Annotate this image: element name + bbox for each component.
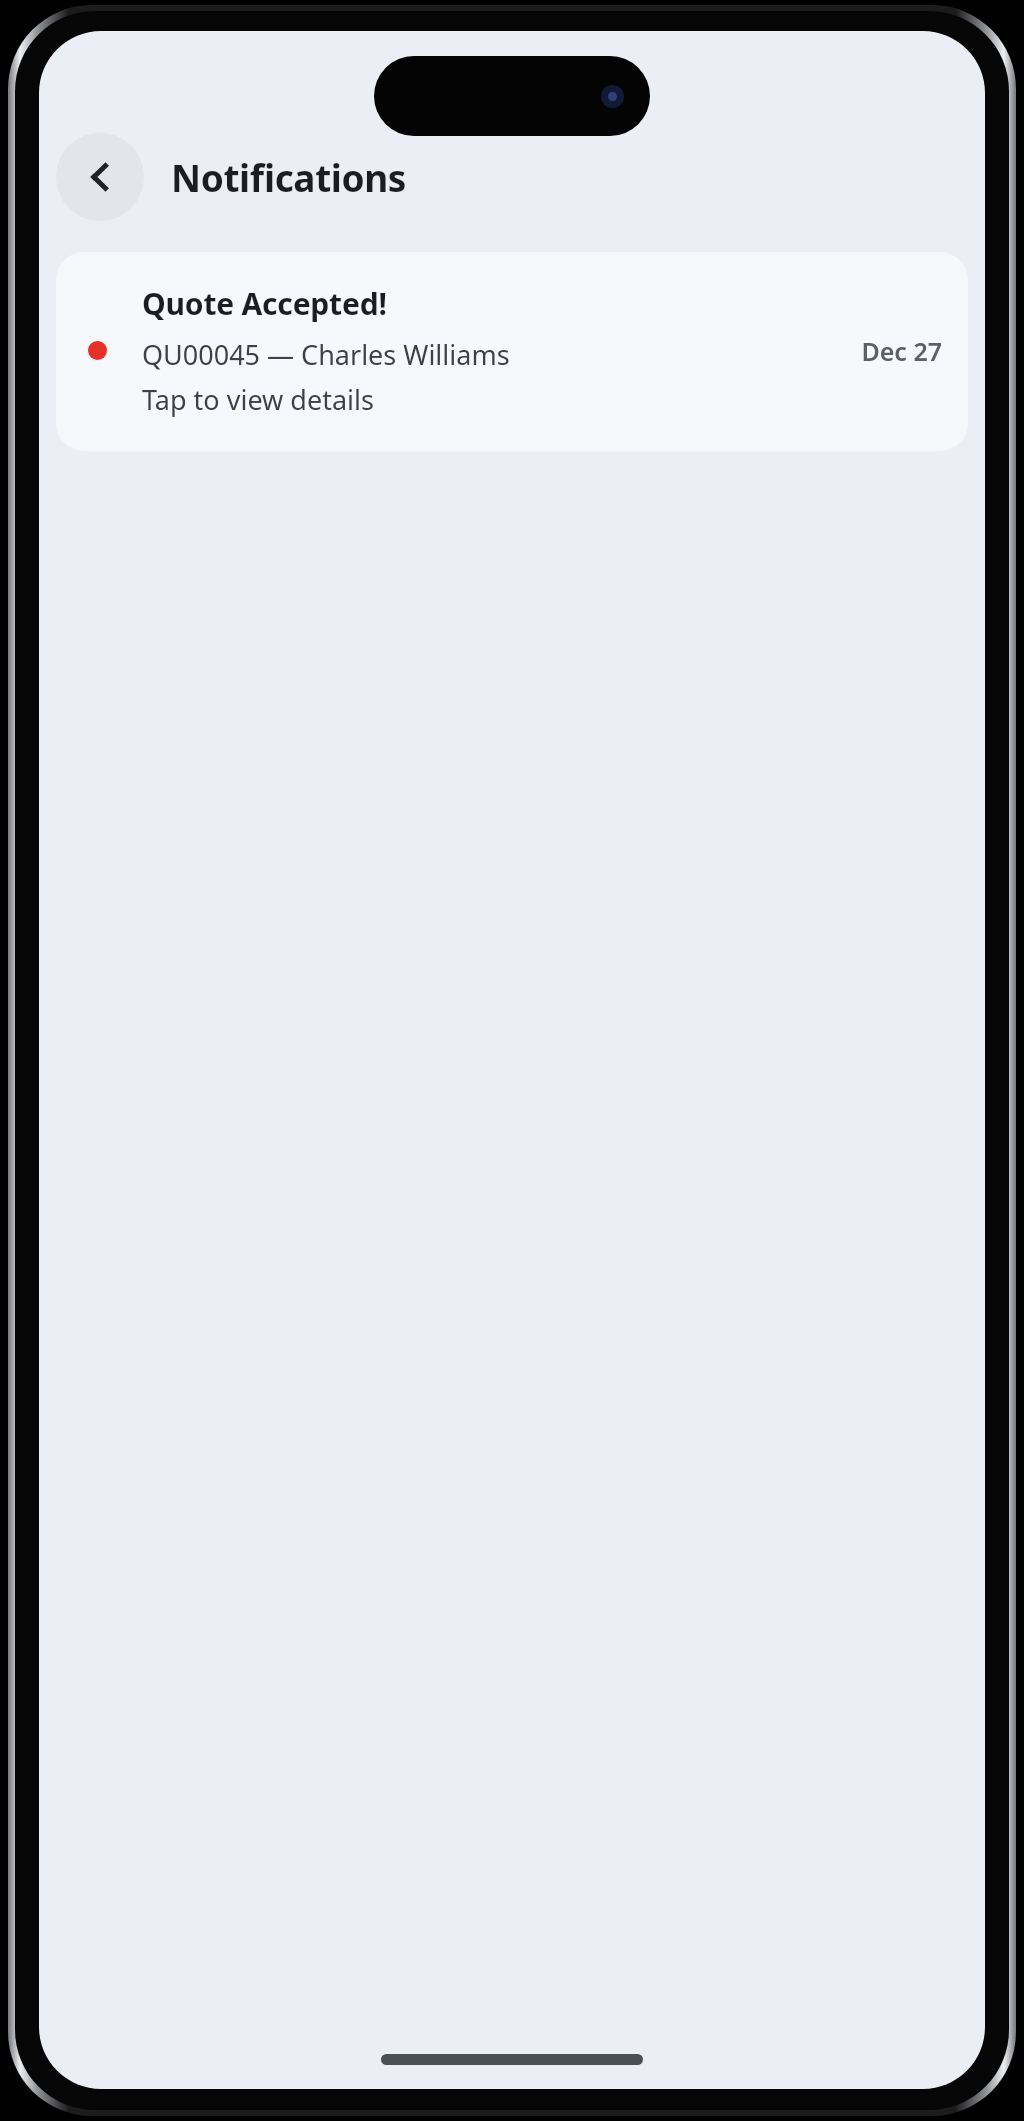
button[interactable]: Quote Accepted! bbox=[56, 252, 968, 451]
staticText: QU00045 — Charles Williams bbox=[142, 336, 510, 373]
staticText: Dec 27 bbox=[861, 334, 942, 368]
staticText: Quote Accepted! bbox=[142, 283, 387, 324]
staticText: Tap to view details bbox=[142, 381, 374, 418]
button[interactable]: Back bbox=[56, 133, 144, 221]
staticText: Notifications bbox=[171, 152, 406, 202]
